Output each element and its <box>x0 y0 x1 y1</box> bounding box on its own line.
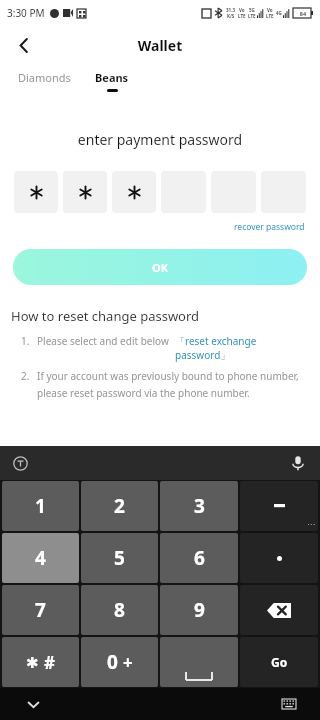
button[interactable]: Voice input <box>284 449 312 477</box>
button[interactable]: 6 <box>160 533 238 583</box>
staticText: ⋯ <box>307 520 315 529</box>
button[interactable]: Switch keyboard <box>276 691 302 717</box>
staticText: 4G <box>276 10 282 16</box>
button[interactable]: OK <box>13 249 307 285</box>
button[interactable]: 2 <box>81 481 158 531</box>
button[interactable]: Translate <box>6 449 34 477</box>
staticText: Wallet <box>0 36 320 55</box>
button[interactable]: Beans <box>91 64 133 98</box>
staticText: 8 <box>114 597 125 623</box>
staticText: 3 <box>194 493 205 519</box>
staticText: If your account was previously bound to … <box>37 369 299 383</box>
staticText: ✱ <box>26 654 39 671</box>
staticText: How to reset change password <box>11 307 200 325</box>
staticText: OK <box>152 260 169 275</box>
button[interactable]: Back <box>8 29 40 61</box>
button[interactable]: Diamonds <box>14 64 75 91</box>
button[interactable]: Backspace <box>240 585 318 635</box>
staticText: + <box>123 651 133 674</box>
staticText: 84 <box>293 10 313 17</box>
button[interactable] <box>14 171 58 213</box>
button[interactable]: Space <box>160 637 238 687</box>
staticText: 4 <box>35 545 46 571</box>
staticText: Vo <box>239 7 245 13</box>
button[interactable]: ✱ <box>2 637 79 687</box>
staticText: Go <box>271 654 288 670</box>
staticText: 9 <box>194 597 205 623</box>
staticText: 2 <box>114 493 125 519</box>
button[interactable] <box>112 171 156 213</box>
staticText: 31.3 <box>226 7 235 13</box>
button[interactable] <box>63 171 107 213</box>
staticText: 5G <box>249 7 255 13</box>
staticText: 「reset exchange password」 <box>175 334 309 362</box>
staticText: 7 <box>35 597 46 623</box>
button[interactable]: Symbols <box>240 533 318 583</box>
staticText: LTE <box>266 13 274 19</box>
button[interactable]: Hide keyboard <box>20 691 46 717</box>
button[interactable]: 7 <box>2 585 79 635</box>
staticText: 3:30 PM <box>7 6 45 20</box>
button[interactable]: 5 <box>81 533 158 583</box>
button[interactable]: 9 <box>160 585 238 635</box>
button[interactable]: 4 <box>2 533 79 583</box>
button[interactable]: 0 <box>81 637 158 687</box>
staticText: please reset password via the phone numb… <box>37 386 250 400</box>
button[interactable]: 3 <box>160 481 238 531</box>
button[interactable]: 8 <box>81 585 158 635</box>
staticText: enter payment password <box>0 130 320 149</box>
button[interactable]: Symbols <box>240 481 318 531</box>
staticText: recover password <box>234 221 305 233</box>
staticText: Diamonds <box>18 70 71 85</box>
button[interactable]: 1 <box>2 481 79 531</box>
staticText: Beans <box>95 70 129 85</box>
staticText: 6 <box>194 545 205 571</box>
button[interactable]: Go <box>240 637 318 687</box>
staticText: K/S <box>227 13 235 19</box>
staticText: # <box>44 651 55 674</box>
staticText: 5 <box>114 545 125 571</box>
staticText: 1 <box>35 493 46 519</box>
staticText: 0 <box>107 649 118 675</box>
staticText: LTE <box>238 13 246 19</box>
button[interactable]: 「reset exchange password」 <box>175 334 309 362</box>
staticText: 2. <box>21 369 30 383</box>
staticText: LTE <box>248 13 256 19</box>
staticText: Please select and edit below <box>37 334 169 348</box>
staticText: 1. <box>21 334 30 348</box>
button[interactable]: recover password <box>232 219 307 235</box>
staticText: Vo <box>267 7 273 13</box>
